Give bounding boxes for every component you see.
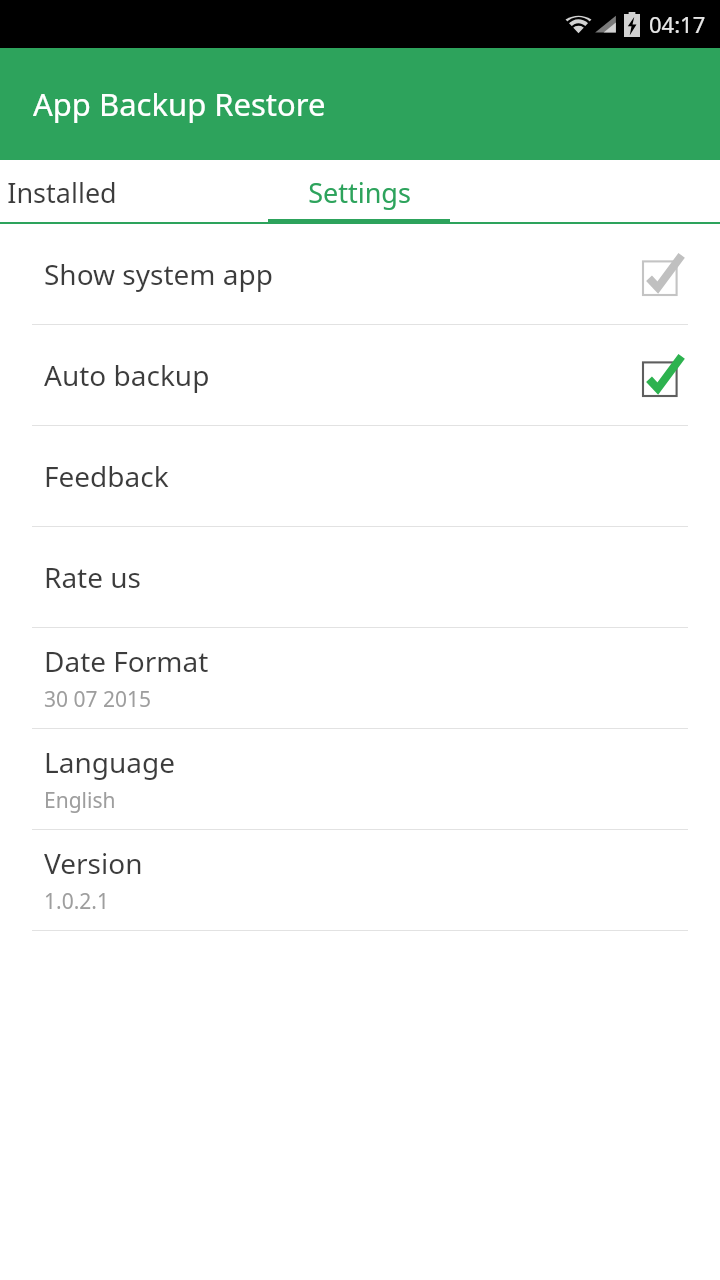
- button[interactable]: Feedback: [0, 426, 720, 526]
- staticText: 04:17: [649, 9, 706, 39]
- staticText: Show system app: [44, 255, 640, 293]
- button[interactable]: Language: [0, 729, 720, 829]
- button[interactable]: Auto backup: [640, 351, 688, 399]
- button[interactable]: Installed: [0, 160, 153, 224]
- button[interactable]: Auto backup: [0, 325, 720, 425]
- staticText: English: [44, 786, 116, 815]
- staticText: 30 07 2015: [44, 685, 152, 714]
- staticText: Feedback: [44, 457, 169, 495]
- staticText: Date Format: [44, 642, 209, 680]
- staticText: Auto backup: [44, 356, 640, 394]
- button[interactable]: Rate us: [0, 527, 720, 627]
- button[interactable]: Show system app: [0, 224, 720, 324]
- button[interactable]: Version: [0, 830, 720, 930]
- staticText: Installed: [7, 174, 117, 211]
- button[interactable]: Date Format: [0, 628, 720, 728]
- staticText: Rate us: [44, 558, 142, 596]
- button[interactable]: Show system app: [640, 250, 688, 298]
- staticText: App Backup Restore: [33, 83, 326, 125]
- button[interactable]: Settings: [268, 160, 450, 224]
- staticText: Settings: [308, 174, 411, 211]
- staticText: Language: [44, 743, 175, 781]
- staticText: 1.0.2.1: [44, 887, 109, 916]
- staticText: Version: [44, 844, 143, 882]
